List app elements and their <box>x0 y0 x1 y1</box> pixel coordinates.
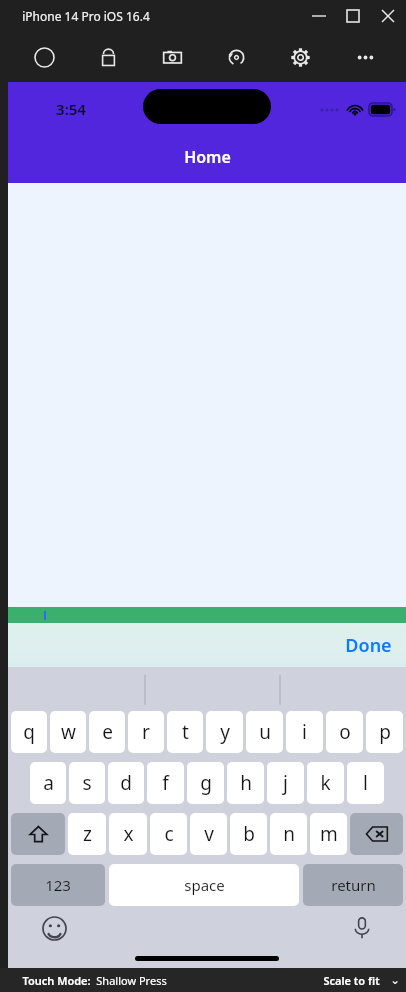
staticText: n <box>283 821 295 847</box>
button[interactable]: e <box>89 711 125 753</box>
staticText: x <box>123 821 134 847</box>
button[interactable]: p <box>366 711 403 753</box>
button[interactable]: Settings <box>280 37 320 77</box>
staticText: l <box>363 770 368 796</box>
staticText: b <box>243 821 255 847</box>
staticText: i <box>302 719 307 745</box>
button[interactable]: Emoji <box>38 912 70 944</box>
staticText: 3:54 <box>56 99 86 119</box>
button[interactable]: t <box>167 711 203 753</box>
button[interactable]: Rotate <box>216 37 256 77</box>
staticText: h <box>240 770 252 796</box>
button[interactable]: k <box>307 762 344 804</box>
staticText: Home <box>184 146 231 168</box>
staticText: z <box>83 821 92 847</box>
button[interactable]: Close <box>370 1 406 31</box>
button[interactable]: return <box>303 864 403 906</box>
staticText: f <box>162 770 169 796</box>
staticText: y <box>220 719 230 745</box>
button[interactable]: i <box>286 711 323 753</box>
button[interactable]: o <box>326 711 363 753</box>
button[interactable]: j <box>267 762 304 804</box>
button[interactable]: f <box>147 762 184 804</box>
button[interactable]: space <box>109 864 299 906</box>
staticText: e <box>102 719 113 745</box>
staticText: k <box>320 770 331 796</box>
button[interactable]: l <box>347 762 384 804</box>
button[interactable]: Shift <box>11 813 65 855</box>
staticText: iPhone 14 Pro iOS 16.4 <box>22 8 150 24</box>
button[interactable]: h <box>227 762 264 804</box>
staticText: Done <box>345 633 392 658</box>
button[interactable]: n <box>270 813 307 855</box>
button[interactable]: y <box>206 711 243 753</box>
staticText: g <box>200 770 212 796</box>
button[interactable]: Maximize <box>336 1 370 31</box>
staticText: 123 <box>45 875 71 895</box>
staticText: space <box>184 875 225 895</box>
button[interactable]: More options <box>345 37 385 77</box>
button[interactable]: Minimize <box>302 1 336 31</box>
staticText: d <box>120 770 132 796</box>
staticText: a <box>43 770 54 796</box>
button[interactable]: Done <box>331 625 406 666</box>
button[interactable]: 123 <box>11 864 105 906</box>
button[interactable]: g <box>187 762 224 804</box>
staticText: u <box>259 719 271 745</box>
button[interactable]: q <box>11 711 47 753</box>
button[interactable]: m <box>310 813 347 855</box>
button[interactable]: Home <box>24 37 64 77</box>
button[interactable]: Lock <box>88 37 128 77</box>
button[interactable]: b <box>230 813 267 855</box>
staticText: p <box>379 719 391 745</box>
staticText: s <box>82 770 92 796</box>
button[interactable]: s <box>69 762 105 804</box>
button[interactable]: a <box>30 762 66 804</box>
button[interactable]: z <box>68 813 106 855</box>
button[interactable]: c <box>150 813 187 855</box>
button[interactable]: u <box>246 711 283 753</box>
staticText: return <box>331 875 376 895</box>
button[interactable]: d <box>108 762 144 804</box>
staticText: t <box>182 719 189 745</box>
button[interactable]: w <box>50 711 86 753</box>
staticText: ⌄ <box>390 974 400 987</box>
staticText: m <box>320 821 338 847</box>
staticText: j <box>283 770 288 796</box>
button[interactable]: v <box>190 813 227 855</box>
staticText: q <box>23 719 35 745</box>
button[interactable]: x <box>109 813 147 855</box>
button[interactable]: r <box>128 711 164 753</box>
button[interactable]: Backspace <box>350 813 403 855</box>
staticText: c <box>164 821 174 847</box>
staticText: o <box>339 719 351 745</box>
staticText: v <box>204 821 214 847</box>
staticText: r <box>142 719 150 745</box>
button[interactable]: Screenshot <box>152 37 192 77</box>
staticText: w <box>61 719 76 745</box>
button[interactable]: Dictation <box>346 912 378 944</box>
staticText: Scale to fit <box>323 973 380 988</box>
staticText: Touch Mode: <box>22 973 91 988</box>
staticText: Shallow Press <box>96 973 167 988</box>
